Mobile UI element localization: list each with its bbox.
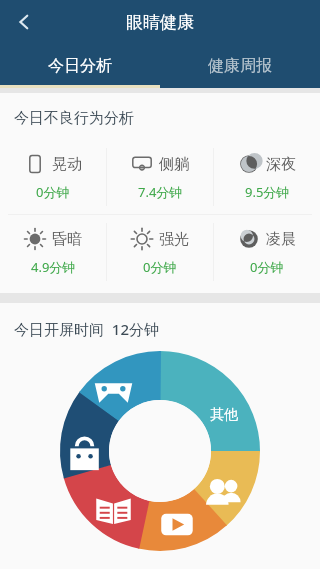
staticText: 今日开屏时间 12分钟 xyxy=(14,319,159,339)
staticText: 4.9分钟 xyxy=(31,258,76,276)
staticText: 其他 xyxy=(210,406,238,424)
staticText: 深夜 xyxy=(266,155,296,174)
staticText: 健康周报 xyxy=(208,56,272,76)
staticText: 0分钟 xyxy=(250,258,284,276)
staticText: 侧躺 xyxy=(159,155,189,174)
staticText: 今日不良行为分析 xyxy=(14,109,134,128)
staticText: 晃动 xyxy=(52,155,82,174)
button[interactable]: 今日分析 xyxy=(0,44,160,88)
button[interactable]: 侧躺 xyxy=(107,140,213,214)
staticText: 0分钟 xyxy=(143,258,177,276)
button[interactable]: 晃动 xyxy=(0,140,106,214)
staticText: 7.4分钟 xyxy=(138,183,183,201)
button[interactable]: Back xyxy=(4,2,44,42)
button[interactable]: Screen time breakdown chart xyxy=(60,351,260,551)
button[interactable]: 健康周报 xyxy=(160,44,320,88)
staticText: 强光 xyxy=(159,230,189,249)
button[interactable]: 强光 xyxy=(107,215,213,289)
staticText: 0分钟 xyxy=(36,183,70,201)
button[interactable]: 凌晨 xyxy=(214,215,320,289)
button[interactable]: 深夜 xyxy=(214,140,320,214)
staticText: 凌晨 xyxy=(266,230,296,249)
staticText: 今日分析 xyxy=(48,56,112,76)
staticText: 眼睛健康 xyxy=(126,12,194,33)
button[interactable]: 昏暗 xyxy=(0,215,106,289)
staticText: 9.5分钟 xyxy=(245,183,290,201)
staticText: 昏暗 xyxy=(52,230,82,249)
